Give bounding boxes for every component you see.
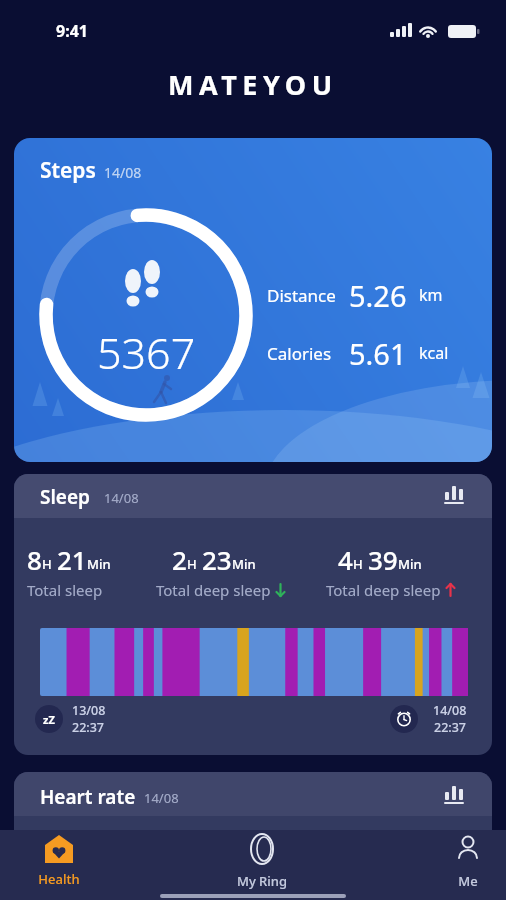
staticText: Min: [398, 555, 422, 573]
staticText: H: [353, 555, 363, 573]
staticText: 22:37: [72, 719, 105, 736]
staticText: Total deep sleep: [156, 580, 271, 600]
staticText: 14/08: [144, 789, 179, 807]
staticText: 8: [27, 542, 42, 577]
staticText: Steps: [40, 156, 96, 185]
staticText: km: [419, 284, 443, 306]
button[interactable]: Health: [17, 830, 101, 900]
button[interactable]: My Ring: [220, 830, 304, 900]
staticText: 23: [202, 542, 232, 577]
staticText: 5.61: [349, 334, 407, 372]
staticText: My Ring: [220, 872, 304, 890]
staticText: zZ: [43, 712, 55, 727]
staticText: 14/08: [433, 702, 467, 719]
button[interactable]: Steps: [14, 138, 492, 462]
staticText: 14/08: [104, 489, 139, 507]
button[interactable]: Me: [426, 830, 506, 900]
staticText: Total sleep: [27, 580, 103, 600]
staticText: 4: [338, 542, 353, 577]
staticText: Calories: [267, 342, 332, 365]
staticText: Total deep sleep: [326, 580, 441, 600]
staticText: Heart rate: [40, 784, 136, 810]
staticText: 2: [172, 542, 187, 577]
staticText: Me: [426, 872, 506, 890]
staticText: 9:41: [56, 20, 88, 42]
staticText: MATEYOU: [168, 66, 338, 103]
button[interactable]: Heart rate: [14, 772, 492, 830]
staticText: 14/08: [104, 163, 142, 182]
staticText: Sleep: [40, 484, 90, 510]
staticText: Distance: [267, 284, 336, 307]
staticText: 22:37: [434, 719, 467, 736]
staticText: H: [187, 555, 197, 573]
staticText: 39: [368, 542, 398, 577]
staticText: Min: [232, 555, 256, 573]
staticText: 13/08: [72, 702, 106, 719]
staticText: H: [42, 555, 52, 573]
staticText: Health: [17, 870, 101, 888]
button[interactable]: Sleep: [14, 474, 492, 755]
staticText: kcal: [419, 342, 449, 364]
staticText: 5367: [97, 323, 196, 371]
staticText: 21: [57, 542, 87, 577]
staticText: Min: [87, 555, 111, 573]
staticText: 5.26: [349, 276, 407, 314]
